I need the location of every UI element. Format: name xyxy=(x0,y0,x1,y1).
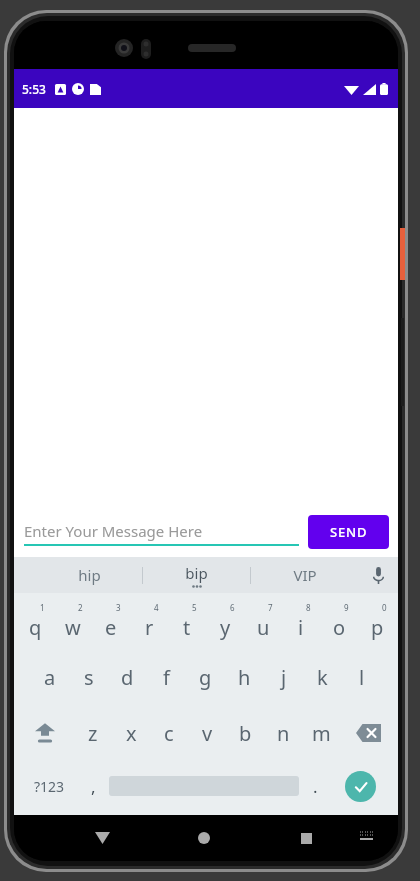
staticText: 3 xyxy=(116,602,121,613)
button[interactable]: 1 xyxy=(16,593,54,650)
button[interactable]: SEND xyxy=(308,515,389,549)
button[interactable]: Enter Your Message Here xyxy=(24,518,299,546)
staticText: 4 xyxy=(154,602,159,613)
button[interactable]: j xyxy=(264,650,303,705)
button[interactable]: 8 xyxy=(282,593,320,650)
staticText: u xyxy=(257,614,270,641)
button[interactable]: hip xyxy=(36,557,142,593)
staticText: p xyxy=(371,614,384,641)
staticText: n xyxy=(277,720,290,747)
staticText: 1 xyxy=(40,602,45,613)
button[interactable]: k xyxy=(303,650,342,705)
staticText: 9 xyxy=(344,602,349,613)
staticText: 5:53 xyxy=(22,81,46,97)
staticText: 2 xyxy=(78,602,83,613)
button[interactable]: . xyxy=(299,761,331,811)
button[interactable]: z xyxy=(73,705,112,761)
button[interactable]: 6 xyxy=(206,593,244,650)
staticText: 8 xyxy=(306,602,311,613)
staticText: , xyxy=(91,775,96,798)
staticText: i xyxy=(298,614,304,641)
staticText: 6 xyxy=(230,602,235,613)
staticText: s xyxy=(84,664,94,691)
button[interactable]: s xyxy=(69,650,108,705)
button[interactable]: f xyxy=(147,650,186,705)
button[interactable]: 0 xyxy=(358,593,396,650)
staticText: . xyxy=(313,775,318,798)
staticText: VIP xyxy=(293,565,317,585)
staticText: o xyxy=(333,614,346,641)
staticText: w xyxy=(65,614,81,641)
button[interactable]: c xyxy=(150,705,188,761)
button[interactable]: Home xyxy=(187,821,221,855)
button[interactable]: 2 xyxy=(54,593,92,650)
button[interactable]: Shift xyxy=(16,705,73,761)
button[interactable]: 7 xyxy=(244,593,282,650)
button[interactable]: d xyxy=(108,650,147,705)
button[interactable]: Back xyxy=(85,821,119,855)
button[interactable]: Voice input xyxy=(358,557,398,593)
staticText: e xyxy=(105,614,117,641)
staticText: z xyxy=(88,720,98,747)
staticText: 0 xyxy=(382,602,387,613)
staticText: bip xyxy=(185,563,208,583)
staticText: y xyxy=(220,614,231,641)
staticText: d xyxy=(121,664,134,691)
staticText: f xyxy=(163,664,170,691)
staticText: 7 xyxy=(268,602,273,613)
staticText: j xyxy=(281,664,287,691)
button[interactable]: 9 xyxy=(320,593,358,650)
staticText: l xyxy=(359,664,365,691)
staticText: 5 xyxy=(192,602,197,613)
staticText: hip xyxy=(78,565,101,585)
button[interactable]: , xyxy=(77,761,109,811)
button[interactable]: Enter xyxy=(331,761,390,811)
staticText: a xyxy=(44,664,56,691)
button[interactable]: bip xyxy=(143,557,250,593)
staticText: SEND xyxy=(330,523,368,541)
staticText: m xyxy=(312,720,331,747)
button[interactable]: b xyxy=(226,705,264,761)
button[interactable]: 5 xyxy=(168,593,206,650)
staticText: v xyxy=(202,720,213,747)
staticText: c xyxy=(164,720,174,747)
button[interactable]: Recent apps xyxy=(289,821,323,855)
staticText: r xyxy=(145,614,154,641)
button[interactable]: VIP xyxy=(251,557,358,593)
staticText: b xyxy=(239,720,252,747)
staticText: q xyxy=(29,614,42,641)
button[interactable]: h xyxy=(225,650,264,705)
button[interactable]: Delete xyxy=(340,705,396,761)
button[interactable]: x xyxy=(112,705,150,761)
button[interactable]: n xyxy=(264,705,302,761)
button[interactable]: g xyxy=(186,650,225,705)
staticText: t xyxy=(183,614,191,641)
button[interactable]: 4 xyxy=(130,593,168,650)
staticText: k xyxy=(317,664,328,691)
button[interactable]: v xyxy=(188,705,226,761)
staticText: Enter Your Message Here xyxy=(24,521,203,541)
staticText: ?123 xyxy=(34,777,65,796)
staticText: h xyxy=(238,664,251,691)
button[interactable]: ?123 xyxy=(22,761,77,811)
button[interactable]: Change keyboard xyxy=(351,821,381,851)
button[interactable]: 3 xyxy=(92,593,130,650)
button[interactable]: Space xyxy=(109,761,299,811)
staticText: x xyxy=(126,720,137,747)
button[interactable]: l xyxy=(342,650,381,705)
staticText: g xyxy=(199,664,212,691)
button[interactable]: a xyxy=(31,650,69,705)
button[interactable]: m xyxy=(302,705,340,761)
